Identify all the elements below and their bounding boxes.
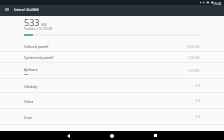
- button[interactable]: Recent apps: [145, 131, 166, 140]
- button[interactable]: Videa: [0, 93, 224, 109]
- staticText: Použito z 15,75 GB: [24, 27, 52, 31]
- staticText: 0 B: [195, 84, 200, 88]
- staticText: Celková paměť: [24, 44, 49, 49]
- button[interactable]: Home: [101, 131, 122, 140]
- staticText: 100 MB: [188, 69, 200, 73]
- button[interactable]: Open navigation drawer: [1, 4, 13, 15]
- staticText: Obrázky: [24, 84, 38, 89]
- staticText: 0 B: [195, 115, 200, 119]
- staticText: Videa: [24, 99, 34, 104]
- staticText: Systémová paměť: [24, 55, 54, 60]
- staticText: MB: [41, 22, 47, 27]
- button[interactable]: Systémová paměť: [0, 52, 224, 63]
- button[interactable]: Aplikace: [0, 63, 224, 79]
- staticText: 1,20 GB: [188, 56, 200, 60]
- button[interactable]: Obrázky: [0, 79, 224, 93]
- button[interactable]: Back: [58, 131, 79, 140]
- staticText: 0 B: [195, 99, 200, 103]
- staticText: Interní úložiště: [14, 7, 39, 12]
- staticText: Aplikace: [24, 67, 38, 72]
- staticText: 533: [24, 16, 40, 28]
- button[interactable]: Zvuk: [0, 109, 224, 125]
- staticText: 15,00 GB: [186, 45, 200, 49]
- staticText: 15:42: [213, 1, 222, 5]
- button[interactable]: Celková paměť: [0, 41, 224, 52]
- staticText: Zvuk: [24, 115, 32, 120]
